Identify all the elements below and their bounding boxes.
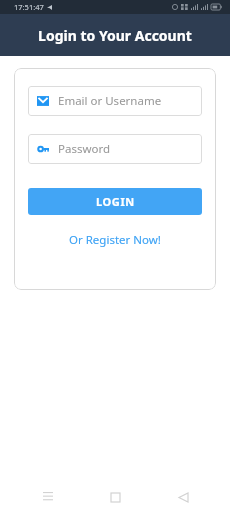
staticText: Or Register Now! <box>69 232 161 248</box>
button[interactable]: Email or Username <box>28 86 202 116</box>
staticText: Password <box>58 141 111 157</box>
button[interactable]: Password <box>28 134 202 164</box>
staticText: LOGIN <box>96 194 135 209</box>
button[interactable]: LOGIN <box>28 188 202 215</box>
button[interactable]: Home <box>95 482 135 512</box>
staticText: Login to Your Account <box>38 26 192 45</box>
button[interactable]: Recent apps <box>28 482 68 512</box>
button[interactable]: Or Register Now! <box>28 227 202 253</box>
button[interactable]: Back <box>163 482 203 512</box>
staticText: 17:51:47 <box>14 2 44 12</box>
staticText: Email or Username <box>58 93 162 109</box>
